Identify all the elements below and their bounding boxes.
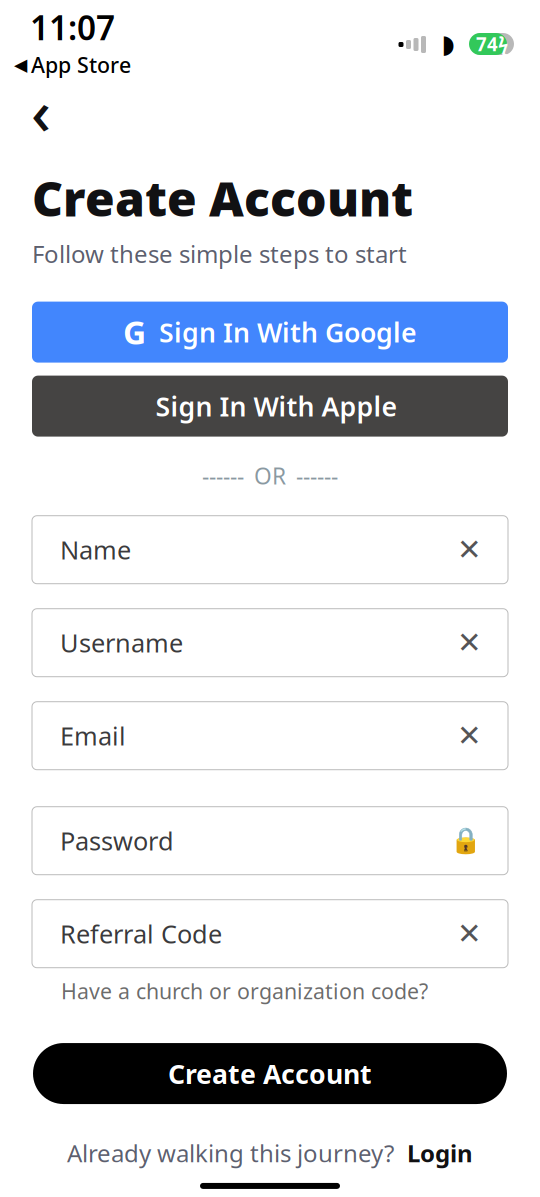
- staticText: 74: [476, 32, 498, 56]
- staticText: ✕: [457, 719, 482, 752]
- button[interactable]: G: [32, 302, 508, 363]
- staticText: Login: [407, 1137, 473, 1169]
- button[interactable]: Create Account: [33, 1043, 507, 1104]
- button[interactable]: Username: [32, 609, 508, 677]
- button[interactable]: [32, 376, 508, 437]
- staticText: Username: [60, 626, 183, 659]
- staticText: ✕: [457, 533, 482, 566]
- staticText: OR: [254, 461, 286, 491]
- staticText: G: [123, 311, 146, 353]
- button[interactable]: Back: [18, 88, 64, 134]
- staticText: Sign In With Google: [159, 314, 417, 350]
- staticText: ϟ: [498, 32, 508, 56]
- staticText: App Store: [31, 50, 131, 79]
- staticText: ◗: [441, 30, 454, 58]
- staticText: ‹: [31, 70, 51, 152]
- staticText: Already walking this journey?: [67, 1137, 394, 1169]
- staticText: Password: [60, 824, 174, 857]
- staticText: Follow these simple steps to start: [32, 238, 407, 270]
- staticText: Referral Code: [60, 917, 222, 950]
- staticText: ------: [202, 461, 244, 491]
- staticText: ✕: [457, 626, 482, 659]
- staticText: 🔒: [450, 826, 482, 855]
- staticText: Create Account: [32, 166, 413, 230]
- staticText: Have a church or organization code?: [61, 977, 428, 1005]
- staticText: ------: [296, 461, 338, 491]
- staticText: Name: [60, 533, 131, 566]
- button[interactable]: Password: [32, 807, 508, 875]
- staticText: ✕: [457, 917, 482, 950]
- button[interactable]: Name: [32, 516, 508, 584]
- staticText: 11:07: [30, 5, 115, 49]
- button[interactable]: Already walking this journey?: [0, 1131, 540, 1175]
- button[interactable]: Referral Code: [32, 900, 508, 968]
- button[interactable]: Email: [32, 702, 508, 770]
- staticText: Create Account: [168, 1056, 372, 1091]
- staticText: Email: [60, 719, 126, 752]
- staticText: Sign In With Apple: [155, 388, 397, 424]
- staticText: ◀: [14, 55, 27, 74]
